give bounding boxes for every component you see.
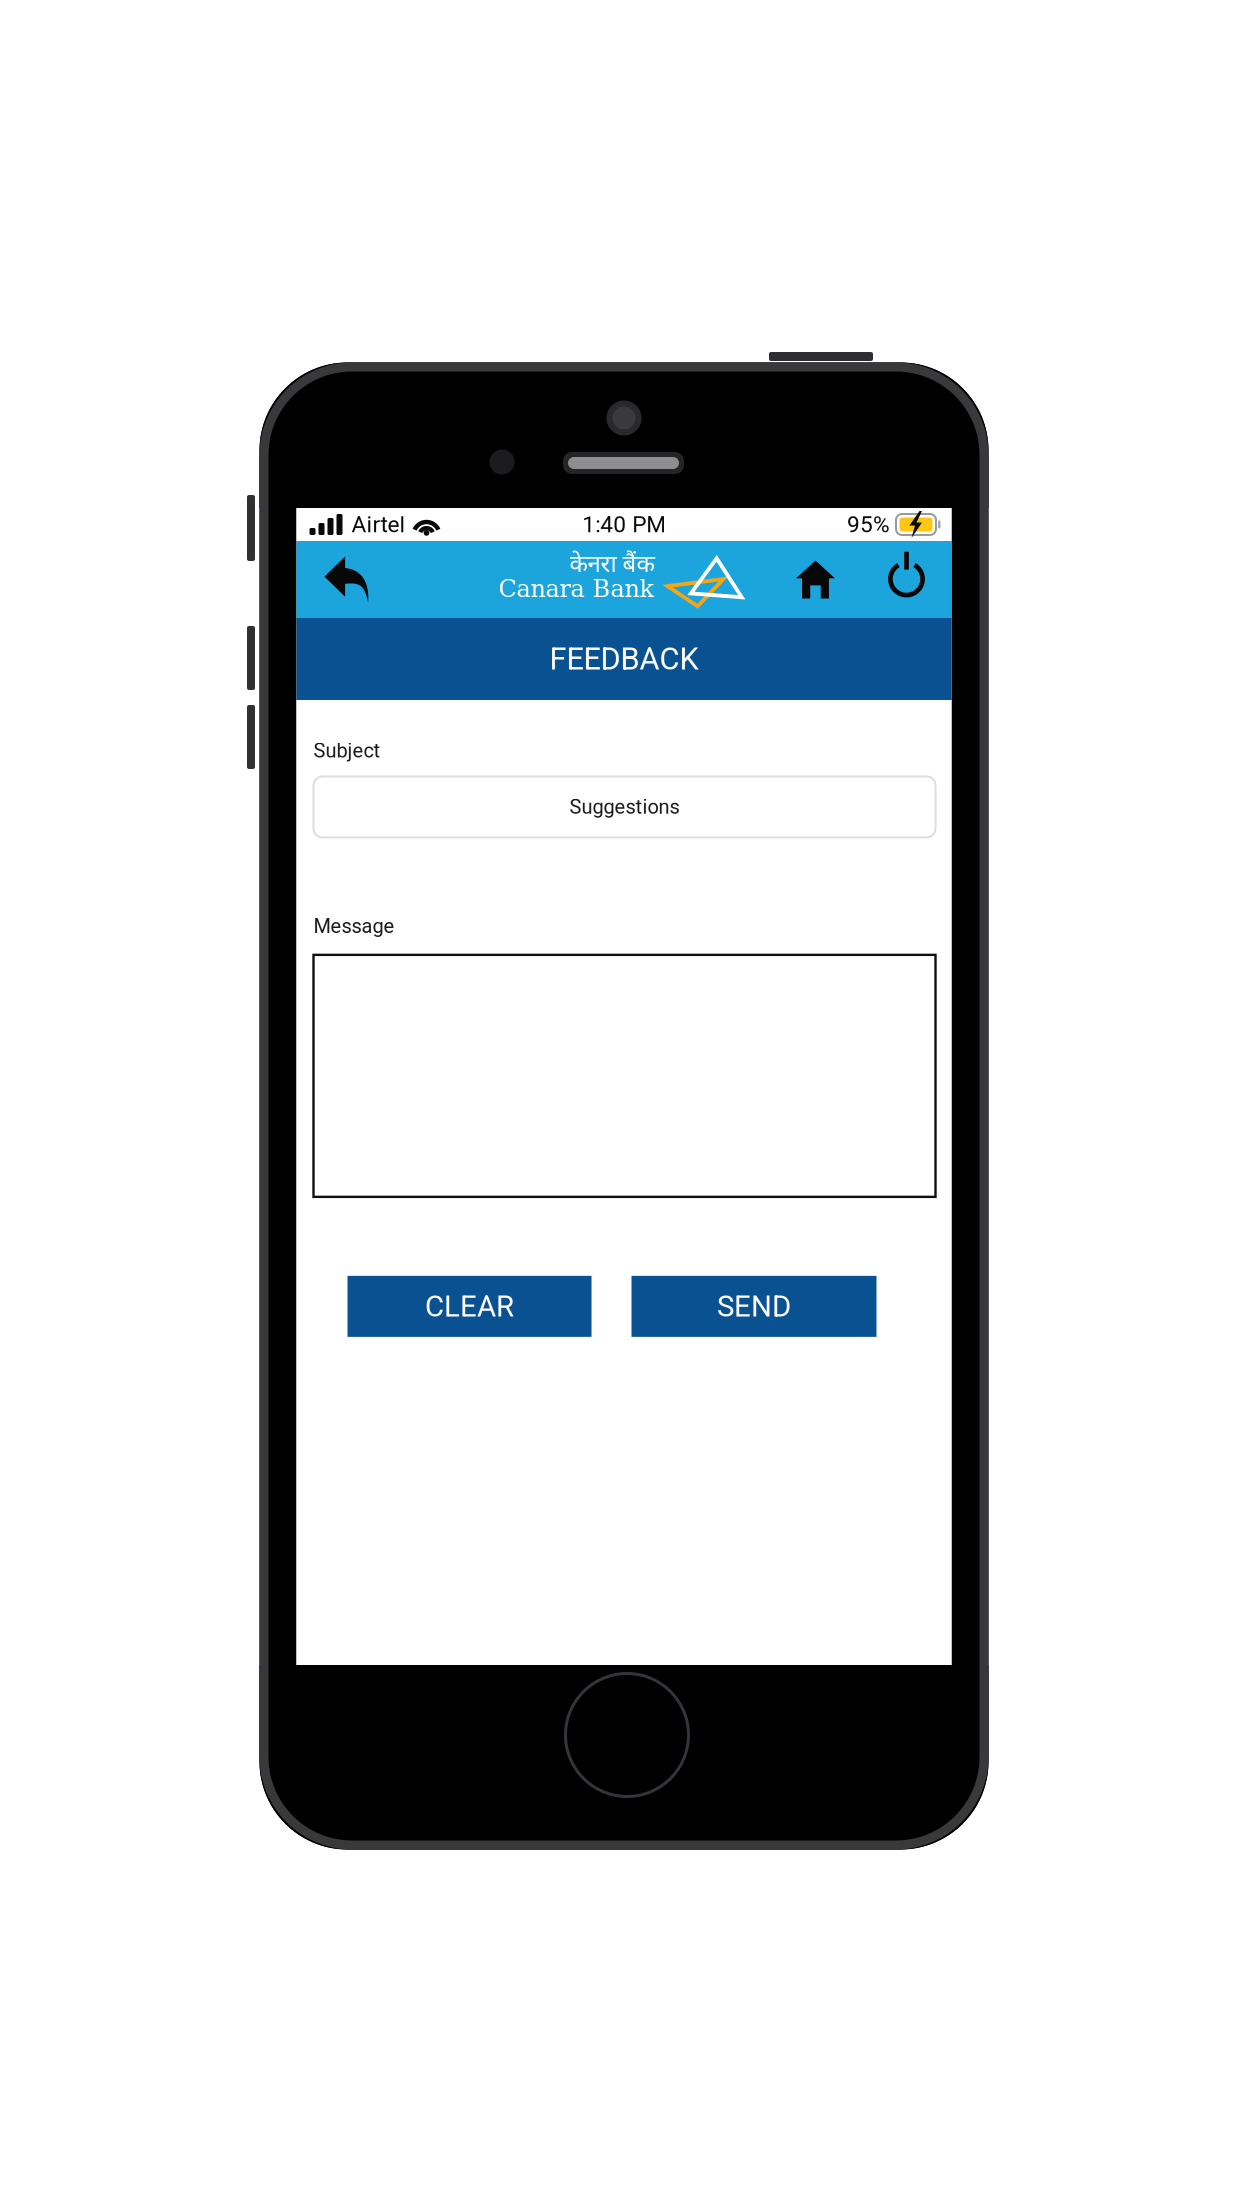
button[interactable]: CLEAR (347, 1276, 591, 1337)
button[interactable]: Suggestions (313, 776, 935, 837)
staticText: Airtel (351, 511, 405, 538)
staticText: Suggestions (569, 795, 679, 819)
button[interactable]: Log out (861, 541, 951, 618)
button[interactable]: SEND (631, 1276, 876, 1337)
button[interactable]: Back (296, 541, 393, 618)
staticText: Canara Bank (498, 575, 654, 603)
staticText: Message (313, 914, 394, 938)
staticText: Subject (313, 739, 380, 762)
staticText: 1:40 PM (582, 511, 666, 538)
staticText: CLEAR (425, 1289, 514, 1324)
staticText: FEEDBACK (549, 641, 698, 677)
staticText: 95% (847, 511, 890, 538)
button[interactable]: Home (749, 541, 861, 618)
staticText: SEND (717, 1289, 791, 1324)
staticText: केनरा बैंक (569, 550, 654, 582)
